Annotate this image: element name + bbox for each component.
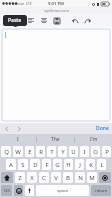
staticText: Paste (8, 17, 22, 24)
button[interactable]: V (51, 172, 61, 183)
staticText: R (39, 148, 43, 156)
button[interactable]: F (42, 159, 51, 170)
button[interactable]: The (37, 134, 74, 144)
button[interactable]: R (36, 146, 45, 157)
button[interactable]: I'm (75, 134, 112, 144)
button[interactable]: B (63, 172, 73, 183)
staticText: return (95, 188, 108, 194)
staticText: O (93, 148, 98, 156)
staticText: F (45, 161, 49, 169)
button[interactable]: return (91, 185, 111, 196)
button[interactable] (2, 29, 110, 121)
staticText: T (50, 148, 54, 156)
staticText: A (9, 161, 13, 169)
button[interactable]: U (69, 146, 78, 157)
button[interactable]: C (39, 172, 49, 183)
staticText: M (89, 174, 95, 182)
staticText: Q (4, 148, 9, 156)
staticText: I (17, 136, 19, 143)
staticText: H (66, 161, 71, 169)
button[interactable]: Y (58, 146, 67, 157)
button[interactable]: A (6, 159, 16, 170)
button[interactable]: Address bar (0, 7, 112, 14)
button[interactable]: W (13, 146, 23, 157)
button[interactable]: Z (15, 172, 25, 183)
staticText: J (79, 161, 81, 169)
button[interactable]: T (47, 146, 56, 157)
button[interactable]: D (30, 159, 40, 170)
button[interactable]: Align left (26, 16, 35, 25)
button[interactable]: Previous field (3, 125, 10, 132)
button[interactable]: N (75, 172, 85, 183)
button[interactable]: Align center (39, 16, 48, 25)
button[interactable]: O (91, 146, 100, 157)
button[interactable]: Q (1, 146, 11, 157)
button[interactable]: G (53, 159, 62, 170)
button[interactable]: J (75, 159, 84, 170)
button[interactable]: Redo (83, 16, 92, 25)
staticText: P (105, 148, 109, 156)
staticText: I (83, 148, 86, 156)
staticText: L (100, 161, 104, 169)
button[interactable]: P (102, 146, 111, 157)
button[interactable]: Backspace (99, 172, 111, 183)
button[interactable]: Next field (15, 125, 22, 132)
staticText: spellcrum.com (44, 8, 69, 13)
button[interactable]: Undo (70, 16, 79, 25)
staticText: Z (18, 174, 22, 182)
staticText: C (42, 174, 46, 182)
button[interactable]: L (97, 159, 106, 170)
staticText: X (30, 174, 34, 182)
button[interactable]: space (36, 185, 89, 196)
button[interactable]: 123 (1, 185, 12, 196)
button[interactable]: H (64, 159, 73, 170)
staticText: space (57, 188, 69, 194)
staticText: N (78, 174, 83, 182)
button[interactable]: K (86, 159, 95, 170)
button[interactable]: Emoji (14, 185, 23, 196)
staticText: Verizon (12, 1, 25, 6)
staticText: I'm (90, 136, 98, 143)
staticText: D (33, 161, 38, 169)
staticText: The (51, 136, 60, 143)
button[interactable]: X (27, 172, 37, 183)
staticText: Y (61, 148, 65, 156)
button[interactable]: M (87, 172, 97, 183)
staticText: LTE (26, 1, 32, 6)
button[interactable]: Shift (1, 172, 13, 183)
staticText: K (89, 161, 93, 169)
staticText: S (21, 161, 25, 169)
staticText: W (15, 148, 21, 156)
staticText: V (54, 174, 58, 182)
button[interactable]: Done (93, 123, 112, 134)
button[interactable]: Dictate (25, 185, 34, 196)
button[interactable]: S (18, 159, 28, 170)
staticText: U (71, 148, 76, 156)
staticText: G (55, 161, 60, 169)
staticText: B (66, 174, 70, 182)
staticText: 123 (3, 188, 10, 193)
staticText: E (28, 148, 32, 156)
button[interactable]: Paste (3, 15, 27, 26)
button[interactable]: Save (52, 16, 61, 25)
button[interactable]: I (0, 134, 36, 144)
staticText: 9:01 PM (48, 1, 64, 7)
staticText: Done (96, 125, 109, 132)
button[interactable]: E (25, 146, 34, 157)
button[interactable]: I (80, 146, 89, 157)
